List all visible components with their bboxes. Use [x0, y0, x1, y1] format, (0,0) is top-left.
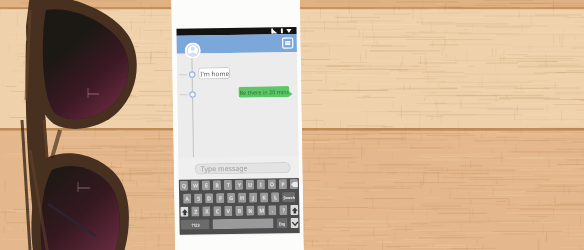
staticText: B	[237, 208, 241, 215]
button[interactable]: R	[213, 180, 221, 190]
button[interactable]: L	[271, 192, 279, 202]
staticText: I'm home	[200, 69, 229, 78]
staticText: O	[270, 181, 274, 188]
button[interactable]: Be there in 20 mins	[238, 86, 290, 98]
button[interactable]: Eng	[276, 218, 288, 228]
button[interactable]: H	[238, 193, 246, 203]
staticText: X	[205, 208, 208, 215]
button[interactable]: del	[290, 179, 298, 189]
staticText: I	[260, 181, 262, 188]
button[interactable]: O	[268, 179, 276, 189]
staticText: J	[252, 195, 254, 202]
button[interactable]: Search	[282, 192, 295, 202]
staticText: L	[274, 194, 277, 201]
staticText: U	[248, 182, 252, 189]
staticText: N	[248, 208, 252, 215]
staticText: M	[259, 207, 264, 214]
staticText: E	[205, 182, 208, 189]
button[interactable]: Q	[180, 181, 188, 191]
staticText: .	[271, 207, 273, 214]
button[interactable]: shift	[180, 207, 188, 217]
button[interactable]: shift	[290, 205, 298, 215]
button[interactable]: Type message	[195, 162, 291, 174]
button[interactable]: D	[205, 193, 213, 203]
staticText: S	[197, 195, 200, 202]
staticText: W	[193, 182, 198, 190]
button[interactable]: K	[260, 192, 268, 202]
staticText: Y	[238, 182, 241, 189]
button[interactable]: F	[216, 193, 224, 203]
staticText: ?123	[191, 222, 200, 228]
button[interactable]: S	[194, 193, 202, 203]
staticText: H	[240, 195, 244, 202]
button[interactable]: down	[290, 218, 299, 228]
button[interactable]: J	[249, 193, 257, 203]
staticText: G	[229, 195, 233, 202]
staticText: A	[185, 196, 189, 203]
staticText: Search	[283, 195, 295, 200]
button[interactable]: I	[257, 179, 265, 189]
staticText: R	[215, 182, 219, 189]
staticText: Q	[182, 183, 186, 190]
button[interactable]: A	[183, 194, 191, 204]
button[interactable]: Y	[235, 180, 243, 190]
staticText: T	[227, 182, 230, 189]
button[interactable]: N	[246, 206, 254, 216]
button[interactable]: P	[279, 179, 287, 189]
button[interactable]: V	[224, 206, 232, 216]
button[interactable]: Space	[212, 218, 274, 229]
button[interactable]: Menu	[283, 38, 293, 48]
button[interactable]: X	[202, 206, 210, 216]
staticText: Z	[194, 208, 197, 215]
button[interactable]: I'm home	[198, 67, 230, 79]
staticText: Type message	[201, 164, 248, 174]
staticText: K	[262, 194, 266, 201]
button[interactable]: C	[213, 206, 221, 216]
staticText: ?	[282, 207, 285, 214]
staticText: Be there in 20 mins	[239, 88, 289, 96]
staticText: P	[281, 181, 285, 188]
button[interactable]: Contact avatar	[185, 42, 201, 59]
button[interactable]: E	[202, 180, 210, 190]
staticText: F	[219, 195, 222, 202]
button[interactable]: W	[191, 180, 199, 191]
button[interactable]: T	[224, 180, 232, 190]
staticText: Eng	[278, 221, 286, 226]
button[interactable]: M	[257, 205, 265, 215]
button[interactable]: ?	[279, 205, 287, 215]
button[interactable]: .	[268, 205, 276, 215]
staticText: D	[207, 195, 211, 202]
button[interactable]: U	[246, 180, 254, 190]
button[interactable]: ?123	[180, 219, 210, 230]
button[interactable]: B	[235, 206, 243, 216]
button[interactable]: Z	[191, 206, 199, 217]
button[interactable]: G	[227, 193, 235, 203]
staticText: C	[215, 208, 219, 215]
staticText: V	[226, 208, 230, 215]
